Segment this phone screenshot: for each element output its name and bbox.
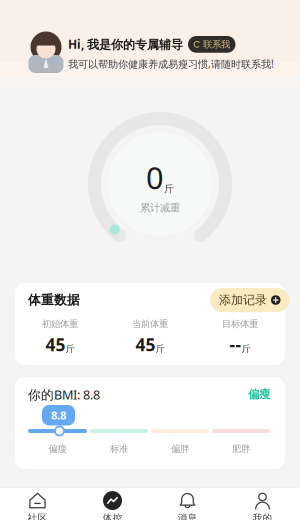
staticText: 联系我 [203,38,230,50]
button[interactable]: 添加记录 [210,288,289,312]
staticText: 斤 [241,343,250,355]
staticText: 我可以帮助你健康养成易瘦习惯,请随时联系我! [68,57,274,71]
button[interactable]: 社区 [0,492,75,520]
button[interactable]: 我的 [225,492,300,520]
staticText: 社区 [27,512,47,520]
staticText: 添加记录 [219,292,267,308]
staticText: 我的 [252,512,272,520]
staticText: 体控 [102,512,122,520]
staticText: 累计减重 [140,201,180,214]
staticText: 0 [146,157,164,198]
staticText: 当前体重 [132,318,168,330]
staticText: 初始体重 [42,318,78,330]
staticText: -- [229,333,241,356]
staticText: 目标体重 [222,318,258,330]
staticText: 你的BMI: 8.8 [28,386,100,403]
staticText: 斤 [155,343,164,355]
staticText: 斤 [164,183,174,195]
staticText: 偏瘦 [248,387,270,401]
staticText: 8.8 [51,407,66,423]
staticText: 标准 [110,443,128,455]
staticText: 45 [45,333,65,356]
staticText: 斤 [65,343,74,355]
staticText: 45 [135,333,155,356]
button[interactable]: 联系我 [188,36,235,53]
staticText: 偏胖 [171,443,189,455]
staticText: 肥胖 [232,443,250,455]
staticText: 体重数据 [28,292,80,308]
staticText: 消息 [177,512,197,520]
staticText: 偏瘦 [48,443,66,455]
button[interactable]: 体控 [75,492,150,520]
button[interactable]: 消息 [150,492,225,520]
staticText: Hi, 我是你的专属辅导 [68,36,183,52]
